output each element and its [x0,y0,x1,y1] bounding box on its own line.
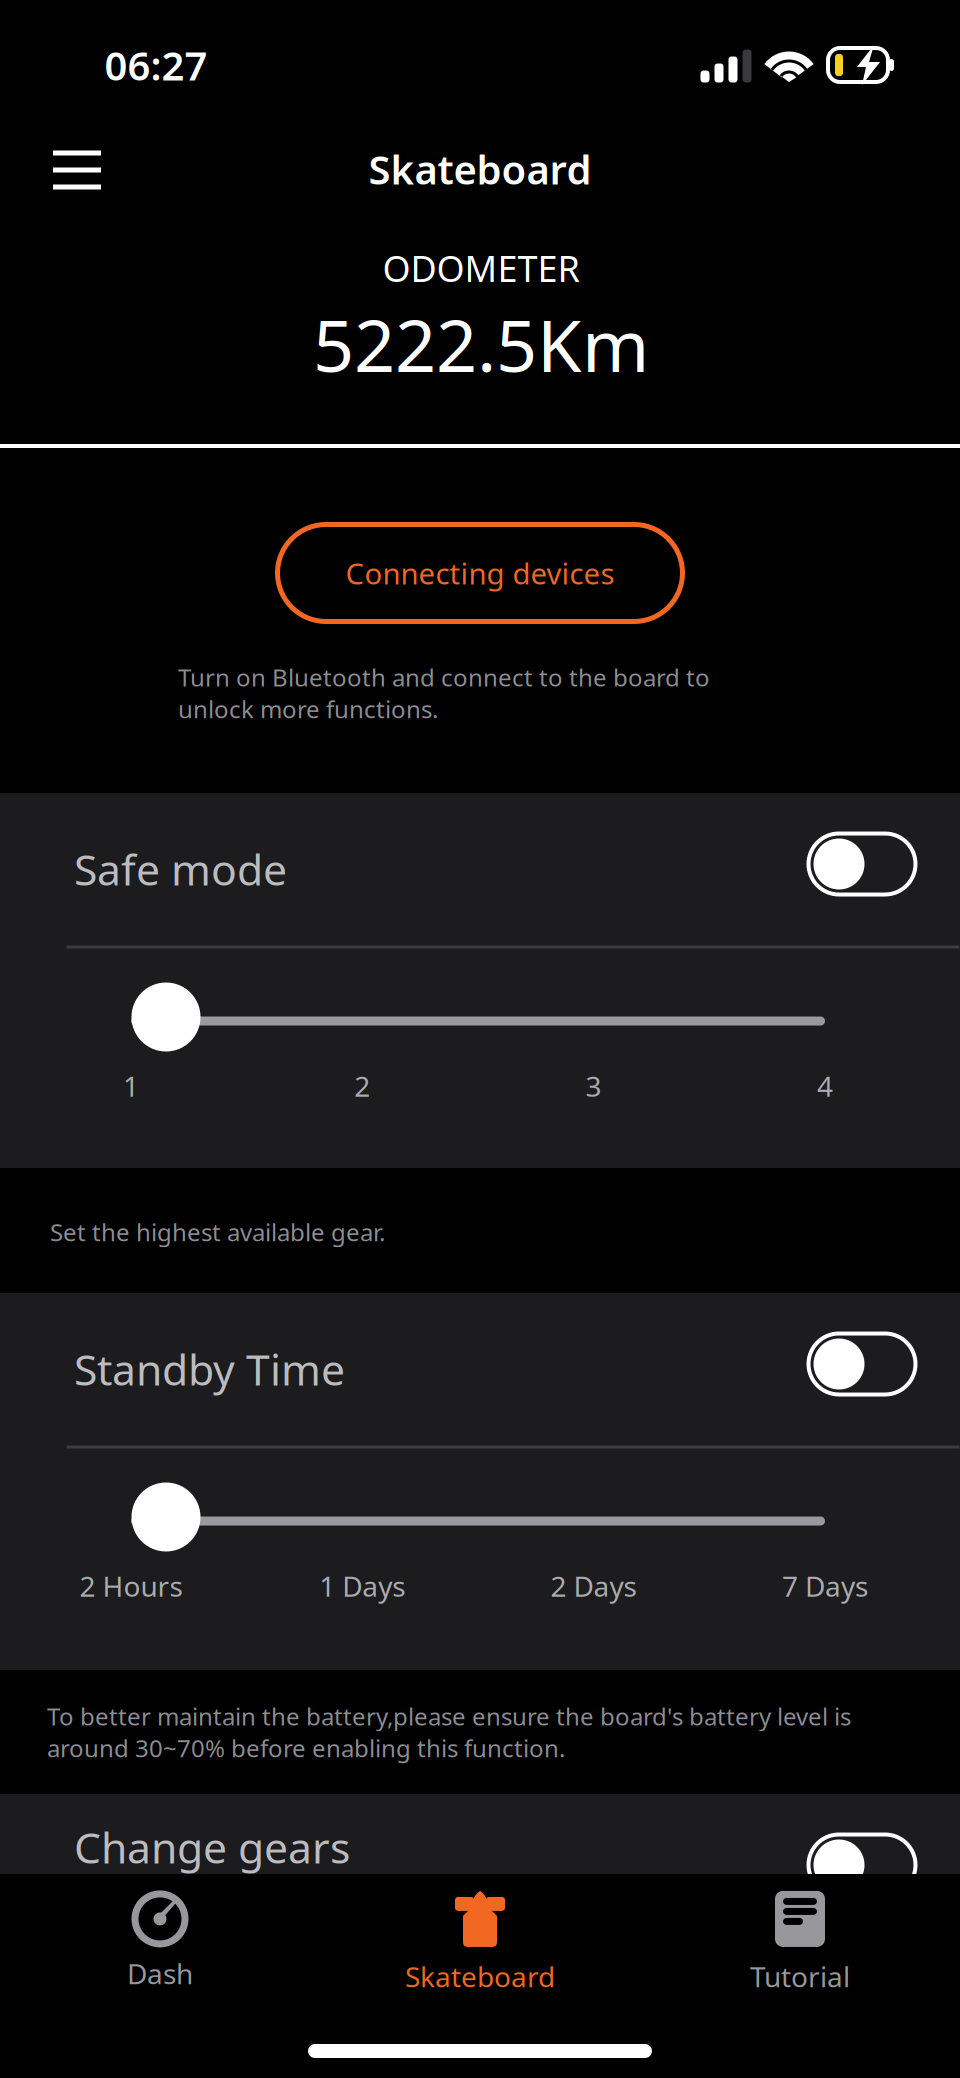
staticText: 3 [586,1067,602,1105]
staticText: Set the highest available gear. [50,1216,385,1248]
button[interactable]: Dash [40,1888,280,1998]
staticText: Change gears [74,1819,350,1875]
staticText: 2 [354,1067,370,1105]
staticText: Connecting devices [345,553,614,592]
staticText: Skateboard [405,1958,555,1995]
button[interactable]: Skateboard [360,1888,600,1998]
staticText: 7 Days [782,1567,868,1605]
button[interactable]: Tutorial [680,1888,920,1998]
button[interactable]: Connecting devices [277,524,682,621]
staticText: 06:27 [104,38,207,91]
staticText: Safe mode [74,841,287,897]
staticText: 4 [817,1067,833,1105]
staticText: Tutorial [750,1958,850,1995]
staticText: Skateboard [368,142,591,195]
staticText: 5222.5Km [313,296,649,392]
staticText: 1 [123,1067,139,1105]
staticText: 2 Hours [79,1567,182,1605]
staticText: Turn on Bluetooth and connect to the boa… [178,661,710,725]
staticText: 1 Days [319,1567,405,1605]
staticText: Dash [127,1955,193,1992]
staticText: To better maintain the battery,please en… [47,1700,851,1764]
button[interactable]: Change gears [800,1826,923,1903]
staticText: ODOMETER [382,244,579,292]
button[interactable]: Standby Time [800,1325,923,1402]
button[interactable]: Safe mode [800,825,923,902]
button[interactable]: Menu [33,130,121,209]
staticText: Standby Time [74,1341,345,1397]
staticText: 2 Days [551,1567,637,1605]
